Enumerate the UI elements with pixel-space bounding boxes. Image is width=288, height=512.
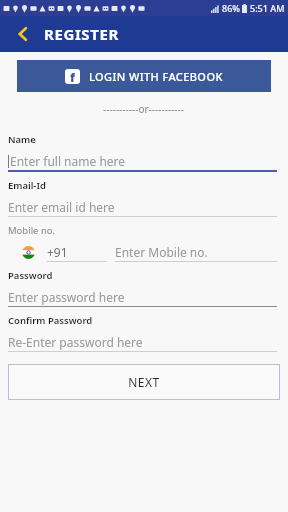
other: India country flag: [22, 246, 35, 259]
staticText: Mobile no.: [8, 224, 56, 237]
button[interactable]: f: [17, 60, 271, 92]
staticText: Re-Enter password here: [8, 334, 143, 350]
staticText: 86%: [222, 2, 240, 14]
button[interactable]: Enter email id here: [8, 197, 277, 216]
staticText: Email-Id: [8, 179, 46, 192]
button[interactable]: +91: [47, 243, 107, 262]
staticText: f: [70, 69, 75, 84]
staticText: REGISTER: [44, 24, 119, 44]
button[interactable]: Enter full name here: [8, 151, 277, 170]
button[interactable]: NEXT: [8, 364, 280, 400]
staticText: Confirm Password: [8, 314, 93, 327]
staticText: Enter full name here: [10, 153, 126, 169]
button[interactable]: Enter Mobile no.: [115, 243, 277, 262]
staticText: -----------or-----------: [103, 102, 185, 116]
button[interactable]: Back: [10, 21, 36, 47]
staticText: Password: [8, 269, 53, 282]
staticText: 5:51 AM: [250, 2, 285, 14]
staticText: Name: [8, 133, 36, 146]
staticText: Enter password here: [8, 289, 125, 305]
staticText: Enter Mobile no.: [115, 244, 208, 260]
button[interactable]: Enter password here: [8, 287, 277, 306]
staticText: NEXT: [128, 374, 160, 390]
staticText: +91: [47, 244, 68, 260]
staticText: LOGIN WITH FACEBOOK: [89, 69, 223, 84]
staticText: Enter email id here: [8, 199, 115, 215]
button[interactable]: Re-Enter password here: [8, 332, 277, 351]
